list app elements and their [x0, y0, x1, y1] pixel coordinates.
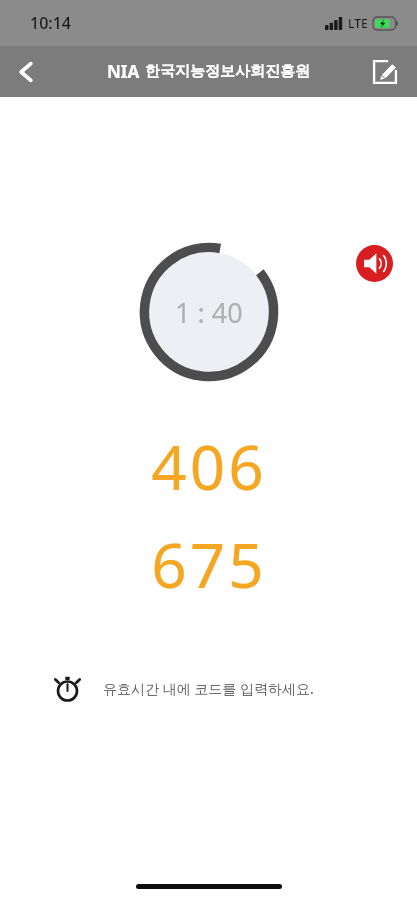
staticText: 10:14 — [30, 12, 71, 34]
staticText: 유효시간 내에 코드를 입력하세요. — [103, 679, 314, 698]
staticText: 675 — [151, 522, 267, 606]
button[interactable]: Edit — [361, 48, 409, 96]
button[interactable]: Back — [0, 46, 52, 97]
staticText: LTE — [348, 15, 368, 31]
staticText: 한국지능정보사회진흥원 — [145, 62, 310, 81]
button[interactable]: Sound — [347, 236, 401, 290]
staticText: 406 — [151, 424, 267, 508]
staticText: NIA — [107, 60, 140, 83]
staticText: 1 : 40 — [175, 294, 243, 331]
